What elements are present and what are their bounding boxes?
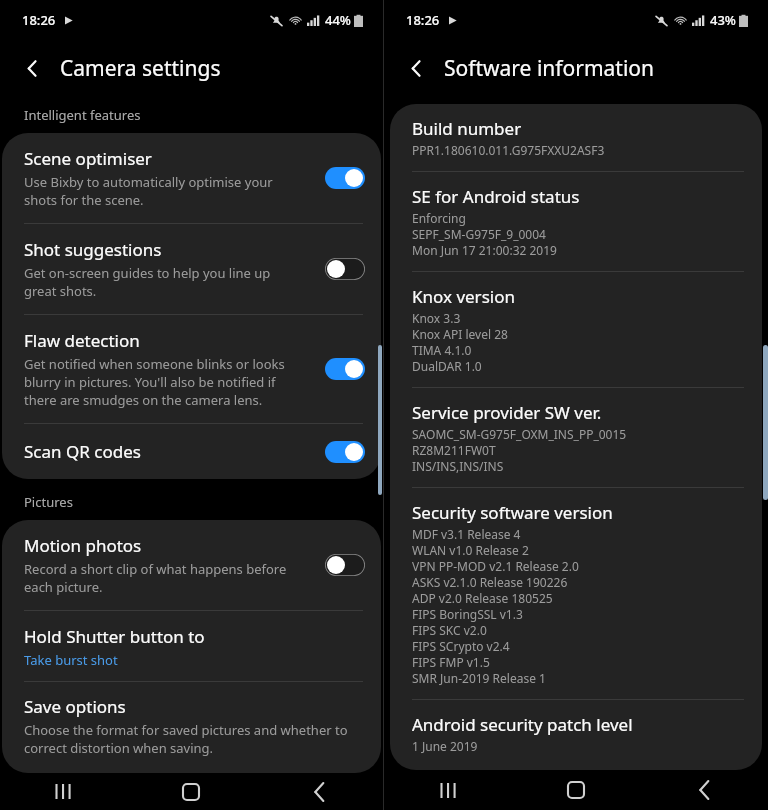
button[interactable]: Android security patch level: [390, 700, 762, 770]
button[interactable]: Home: [512, 770, 640, 810]
button[interactable]: Motion photos: [2, 520, 381, 610]
button[interactable]: Knox version: [390, 272, 762, 387]
staticText: ADP v2.0 Release 180525: [412, 590, 553, 606]
button[interactable]: Recents: [0, 773, 127, 810]
staticText: FIPS SCrypto v2.4: [412, 638, 510, 654]
staticText: ASKS v2.1.0 Release 190226: [412, 574, 568, 590]
staticText: WLAN v1.0 Release 2: [412, 542, 529, 558]
button[interactable]: Scene optimiser: [2, 133, 381, 223]
staticText: Flaw detection: [24, 329, 140, 352]
button[interactable]: Shot suggestions: [2, 224, 381, 314]
staticText: Knox API level 28: [412, 326, 508, 342]
button[interactable]: Back: [255, 773, 383, 810]
button[interactable]: Recents: [384, 770, 512, 810]
button[interactable]: Flaw detection: [2, 315, 381, 423]
staticText: VPN PP-MOD v2.1 Release 2.0: [412, 558, 579, 574]
staticText: 1 June 2019: [412, 738, 478, 754]
staticText: FIPS FMP v1.5: [412, 654, 490, 670]
button[interactable]: Service provider SW ver.: [390, 388, 762, 487]
button[interactable]: Toggle: [325, 441, 365, 463]
staticText: Build number: [412, 117, 522, 140]
staticText: SE for Android status: [412, 185, 580, 208]
staticText: Intelligent features: [24, 106, 141, 124]
staticText: Scan QR codes: [24, 440, 141, 463]
staticText: Security software version: [412, 501, 613, 524]
staticText: Scene optimiser: [24, 147, 152, 170]
staticText: SEPF_SM-G975F_9_0004: [412, 226, 546, 242]
staticText: Get on-screen guides to help you line up…: [24, 264, 271, 300]
staticText: Take burst shot: [24, 651, 118, 669]
staticText: 44%: [325, 11, 351, 29]
staticText: Software information: [444, 54, 654, 83]
staticText: Shot suggestions: [24, 238, 162, 261]
button[interactable]: Build number: [390, 104, 762, 171]
button[interactable]: Home: [127, 773, 255, 810]
button[interactable]: SE for Android status: [390, 172, 762, 271]
staticText: Camera settings: [60, 54, 221, 83]
staticText: Mon Jun 17 21:00:32 2019: [412, 242, 557, 258]
staticText: Hold Shutter button to: [24, 625, 205, 648]
staticText: FIPS BoringSSL v1.3: [412, 606, 523, 622]
button[interactable]: Back: [394, 46, 438, 90]
button[interactable]: Scan QR codes: [2, 424, 381, 479]
staticText: Service provider SW ver.: [412, 401, 602, 424]
staticText: Pictures: [24, 493, 73, 511]
staticText: Choose the format for saved pictures and…: [24, 721, 348, 757]
button[interactable]: Toggle: [325, 358, 365, 380]
staticText: TIMA 4.1.0: [412, 342, 472, 358]
button[interactable]: Toggle: [325, 258, 365, 280]
staticText: MDF v3.1 Release 4: [412, 526, 521, 542]
button[interactable]: Hold Shutter button to: [2, 611, 381, 681]
staticText: INS/INS,INS/INS: [412, 458, 504, 474]
staticText: 43%: [710, 11, 736, 29]
staticText: PPR1.180610.011.G975FXXU2ASF3: [412, 142, 605, 158]
button[interactable]: Save options: [2, 682, 381, 773]
staticText: Android security patch level: [412, 713, 633, 736]
button[interactable]: Security software version: [390, 488, 762, 699]
button[interactable]: Back: [640, 770, 768, 810]
staticText: DualDAR 1.0: [412, 358, 482, 374]
button[interactable]: Toggle: [325, 554, 365, 576]
staticText: Knox version: [412, 285, 515, 308]
staticText: Use Bixby to automatically optimise your…: [24, 173, 273, 209]
staticText: Get notified when someone blinks or look…: [24, 355, 285, 409]
staticText: 18:26: [406, 11, 440, 29]
staticText: Enforcing: [412, 210, 466, 226]
staticText: FIPS SKC v2.0: [412, 622, 487, 638]
staticText: SAOMC_SM-G975F_OXM_INS_PP_0015: [412, 426, 627, 442]
staticText: Knox 3.3: [412, 310, 461, 326]
button[interactable]: Toggle: [325, 167, 365, 189]
staticText: Record a short clip of what happens befo…: [24, 560, 287, 596]
staticText: Motion photos: [24, 534, 142, 557]
staticText: RZ8M211FW0T: [412, 442, 496, 458]
staticText: SMR Jun-2019 Release 1: [412, 670, 546, 686]
button[interactable]: Back: [10, 46, 54, 90]
staticText: Save options: [24, 695, 126, 718]
staticText: 18:26: [22, 11, 56, 29]
